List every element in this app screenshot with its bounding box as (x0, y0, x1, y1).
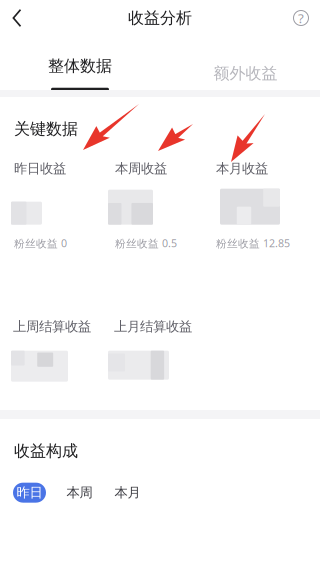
button[interactable]: 本周 (63, 483, 96, 503)
button[interactable]: 帮助 (282, 0, 320, 36)
staticText: 关键数据 (14, 119, 78, 139)
staticText: 本周收益 (115, 160, 167, 177)
staticText: 收益分析 (128, 8, 192, 28)
staticText: 昨日收益 (14, 160, 66, 177)
staticText: ? (298, 9, 304, 27)
button[interactable]: 返回 (0, 0, 34, 36)
staticText: 本周 (66, 484, 92, 501)
staticText: 粉丝收益 0 (14, 236, 67, 250)
staticText: 昨日 (16, 484, 42, 501)
staticText: 粉丝收益 0.5 (115, 236, 177, 250)
staticText: 收益构成 (14, 441, 78, 461)
button[interactable]: 昨日 (13, 483, 46, 503)
button[interactable]: 本月 (111, 483, 144, 503)
staticText: 上周结算收益 (13, 318, 91, 335)
staticText: 本月收益 (216, 160, 268, 177)
button[interactable]: 整体数据 (0, 36, 160, 90)
staticText: 上月结算收益 (114, 318, 192, 335)
staticText: 本月 (114, 484, 140, 501)
staticText: 整体数据 (48, 56, 112, 76)
staticText: 额外收益 (213, 64, 277, 83)
button[interactable]: 额外收益 (160, 36, 320, 90)
staticText: 粉丝收益 12.85 (216, 236, 290, 250)
